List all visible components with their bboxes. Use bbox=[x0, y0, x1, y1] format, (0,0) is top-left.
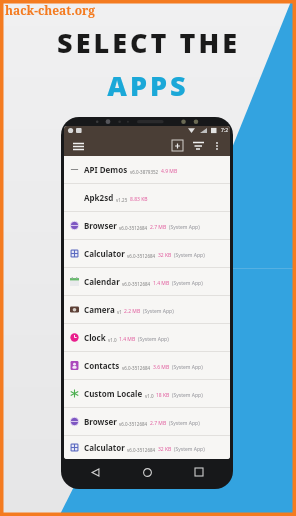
staticText: hack-cheat.org bbox=[5, 2, 96, 18]
staticText: Clock bbox=[84, 332, 106, 343]
staticText: 32 KB bbox=[158, 446, 172, 453]
staticText: 2.7 MB bbox=[150, 420, 167, 427]
staticText: v6.0-3879352 bbox=[130, 169, 159, 175]
staticText: v6.0-3512684 bbox=[127, 447, 156, 453]
staticText: v6.0-3512684 bbox=[119, 225, 148, 231]
staticText: 2.7 MB bbox=[150, 224, 167, 231]
button[interactable]: Apk2sd bbox=[64, 184, 230, 212]
staticText: 2.2 MB bbox=[124, 308, 141, 315]
staticText: Browser bbox=[84, 416, 117, 427]
staticText: 4.9 MB bbox=[161, 168, 178, 175]
staticText: (System App) bbox=[143, 308, 174, 315]
button[interactable]: Open navigation menu bbox=[70, 138, 86, 154]
button[interactable]: Back bbox=[86, 463, 104, 481]
staticText: Apk2sd bbox=[84, 192, 114, 203]
staticText: v1.0 bbox=[108, 337, 117, 343]
staticText: v6.0-3512684 bbox=[122, 365, 151, 371]
button[interactable]: Contacts bbox=[64, 352, 230, 380]
staticText: v1.0 bbox=[145, 393, 154, 399]
button[interactable]: Calculator bbox=[64, 436, 230, 459]
staticText: 3.6 MB bbox=[153, 364, 170, 371]
staticText: API Demos bbox=[84, 164, 128, 175]
staticText: (System App) bbox=[172, 392, 203, 399]
staticText: Custom Locale bbox=[84, 388, 143, 399]
staticText: Calendar bbox=[84, 276, 120, 287]
staticText: 1.4 MB bbox=[153, 280, 170, 287]
button[interactable]: Recent apps bbox=[190, 463, 208, 481]
staticText: v6.0-3512684 bbox=[127, 253, 156, 259]
button[interactable]: API Demos bbox=[64, 156, 230, 184]
button[interactable]: More options bbox=[210, 139, 224, 153]
button[interactable]: New folder bbox=[170, 138, 185, 153]
staticText: v1.25 bbox=[116, 197, 128, 203]
staticText: (System App) bbox=[172, 280, 203, 287]
staticText: Camera bbox=[84, 304, 115, 315]
staticText: v6.0-3512684 bbox=[119, 421, 148, 427]
staticText: 8.83 KB bbox=[130, 196, 148, 203]
staticText: 32 KB bbox=[158, 252, 172, 259]
button[interactable]: Browser bbox=[64, 408, 230, 436]
button[interactable]: Sort bbox=[191, 138, 206, 153]
button[interactable]: Home bbox=[138, 463, 156, 481]
staticText: 1.4 MB bbox=[119, 336, 136, 343]
staticText: 7:2 bbox=[221, 127, 229, 134]
button[interactable]: Camera bbox=[64, 296, 230, 324]
button[interactable]: Custom Locale bbox=[64, 380, 230, 408]
staticText: (System App) bbox=[174, 252, 205, 259]
staticText: (System App) bbox=[169, 420, 200, 427]
staticText: (System App) bbox=[174, 446, 205, 453]
staticText: Calculator bbox=[84, 248, 125, 259]
staticText: 18 KB bbox=[156, 392, 170, 399]
staticText: Browser bbox=[84, 220, 117, 231]
button[interactable]: Browser bbox=[64, 212, 230, 240]
staticText: (System App) bbox=[138, 336, 169, 343]
staticText: Contacts bbox=[84, 360, 120, 371]
staticText: v6.0-3512684 bbox=[122, 281, 151, 287]
staticText: Calculator bbox=[84, 442, 125, 453]
button[interactable]: Calculator bbox=[64, 240, 230, 268]
staticText: v1 bbox=[117, 309, 122, 315]
button[interactable]: Clock bbox=[64, 324, 230, 352]
staticText: APPS bbox=[107, 67, 189, 104]
staticText: (System App) bbox=[172, 364, 203, 371]
staticText: SELECT THE bbox=[57, 24, 240, 61]
button[interactable]: Calendar bbox=[64, 268, 230, 296]
staticText: (System App) bbox=[169, 224, 200, 231]
